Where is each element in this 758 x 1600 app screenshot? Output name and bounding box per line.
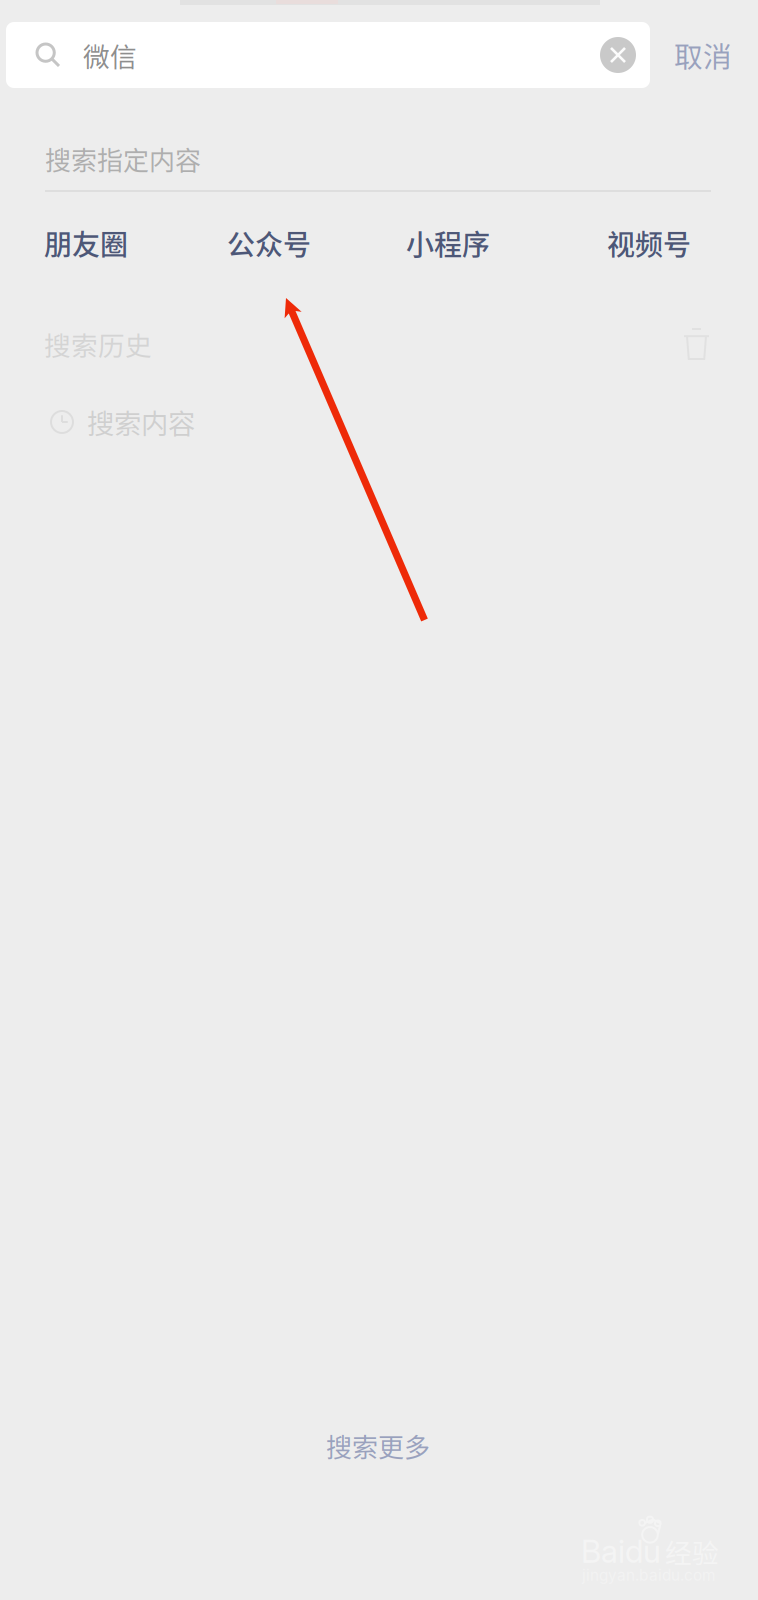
staticText: 小程序 (406, 223, 490, 263)
staticText: 搜索指定内容 (45, 140, 201, 178)
button[interactable]: 搜索更多 (323, 1429, 433, 1463)
staticText: 视频号 (607, 223, 691, 263)
staticText: 搜索内容 (87, 402, 195, 442)
staticText: 微信 (83, 36, 137, 74)
button[interactable]: 微信 (6, 22, 650, 88)
button[interactable]: 搜索内容 (0, 402, 758, 442)
staticText: 取消 (674, 34, 732, 76)
staticText: 搜索更多 (326, 1427, 430, 1465)
button[interactable]: 视频号 (607, 212, 703, 274)
button[interactable]: 取消 (657, 22, 749, 88)
button[interactable]: 公众号 (227, 212, 323, 274)
button[interactable]: 小程序 (406, 212, 502, 274)
staticText: 搜索历史 (44, 325, 152, 363)
staticText: 朋友圈 (44, 223, 128, 263)
staticText: 公众号 (227, 223, 311, 263)
button[interactable]: 朋友圈 (44, 212, 140, 274)
